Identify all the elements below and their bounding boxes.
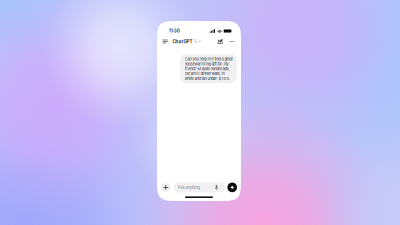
- staticText: Can you help me find a great housewarmin…: [184, 57, 232, 81]
- button[interactable]: Sidebar: [161, 38, 170, 45]
- button[interactable]: Attach: [161, 183, 171, 192]
- button[interactable]: More options: [228, 39, 236, 44]
- button[interactable]: Voice mode: [227, 183, 237, 192]
- button[interactable]: New chat: [216, 37, 225, 46]
- button[interactable]: ChatGPT: [171, 37, 202, 46]
- staticText: Ask anything: [178, 185, 201, 190]
- staticText: ChatGPT: [173, 39, 193, 44]
- staticText: 11:30: [169, 28, 180, 33]
- staticText: 5: [194, 39, 197, 44]
